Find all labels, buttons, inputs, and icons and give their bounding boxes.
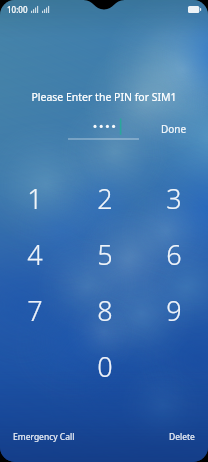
staticText: 3 [166,180,182,217]
button[interactable]: Delete [161,425,208,449]
button[interactable]: 7 [0,282,70,338]
button[interactable]: 5 [70,226,139,282]
staticText: 2 [97,180,113,217]
staticText: 4 [27,236,43,273]
staticText: 1 [27,180,43,217]
other: Battery [188,6,201,13]
staticText: 5 [97,236,113,273]
staticText: 8 [97,292,113,329]
button[interactable]: Done [140,116,208,142]
staticText: Done [161,122,187,136]
other: Signal strength [31,6,39,13]
button[interactable]: 9 [139,282,208,338]
button[interactable]: 0 [70,338,139,394]
other: Signal strength [42,6,50,13]
button[interactable]: 6 [139,226,208,282]
staticText: 9 [166,292,182,329]
staticText: 7 [27,292,43,329]
staticText: 6 [166,236,182,273]
button[interactable]: 4 [0,226,70,282]
button[interactable] [0,116,140,142]
staticText: 0 [97,348,113,385]
staticText: Please Enter the PIN for SIM1 [0,90,208,104]
staticText: 10:00 [7,4,28,15]
button[interactable]: 2 [70,170,139,226]
staticText: Emergency Call [13,431,75,443]
button[interactable]: Emergency Call [0,425,83,449]
button[interactable]: 1 [0,170,70,226]
button[interactable]: 8 [70,282,139,338]
staticText: Delete [169,431,195,443]
button[interactable]: 3 [139,170,208,226]
